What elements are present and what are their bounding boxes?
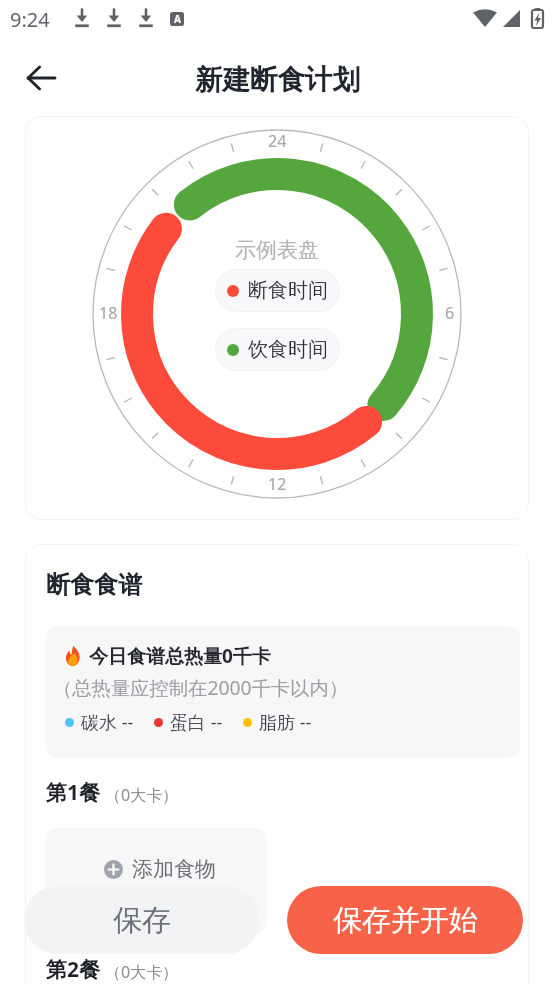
staticText: A [174, 12, 181, 26]
staticText: （总热量应控制在2000千卡以内） [53, 674, 349, 700]
staticText: 6 [445, 302, 455, 324]
staticText: （0大卡） [105, 961, 179, 983]
staticText: 断食时间 [248, 278, 328, 303]
staticText: 今日食谱总热量0千卡 [89, 643, 271, 669]
staticText: 18 [99, 302, 118, 324]
staticText: 新建断食计划 [195, 63, 360, 98]
staticText: 添加食物 [132, 856, 216, 882]
button[interactable]: Back [15, 52, 67, 104]
staticText: 第2餐 [46, 955, 101, 984]
button[interactable]: 添加食物 [46, 828, 266, 935]
staticText: 脂肪 -- [259, 710, 312, 735]
staticText: 保存并开始 [333, 902, 478, 939]
staticText: 24 [268, 130, 287, 152]
staticText: 第1餐 [46, 778, 101, 807]
button[interactable]: 断食时间 [215, 269, 340, 312]
staticText: 9:24 [10, 6, 50, 33]
staticText: 示例表盘 [235, 237, 319, 263]
button[interactable]: 保存并开始 [287, 886, 523, 954]
staticText: 保存 [113, 902, 171, 939]
staticText: 12 [268, 473, 287, 495]
staticText: 碳水 -- [81, 710, 134, 735]
staticText: 饮食时间 [248, 337, 328, 362]
staticText: （0大卡） [105, 784, 179, 806]
staticText: 断食食谱 [46, 570, 142, 600]
staticText: 蛋白 -- [170, 710, 223, 735]
button[interactable]: 饮食时间 [215, 328, 340, 371]
button[interactable]: 保存 [24, 886, 260, 954]
